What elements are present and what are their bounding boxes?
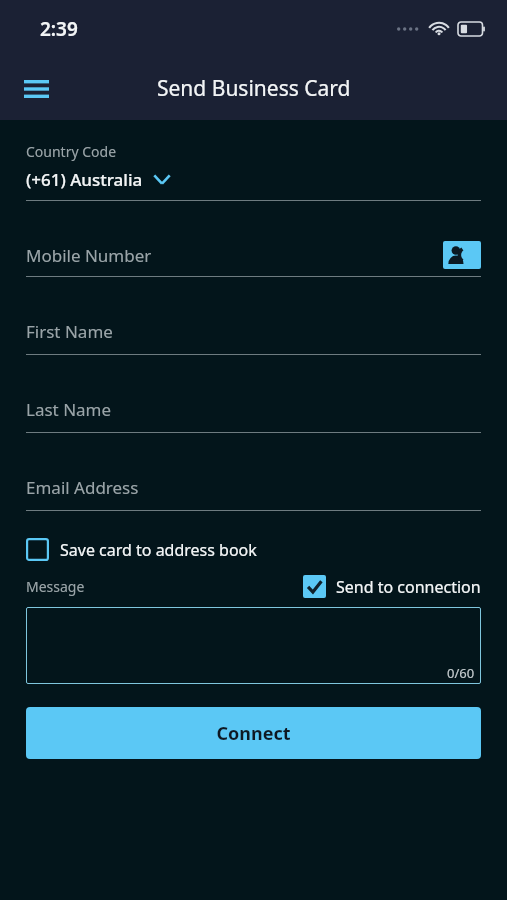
staticText: First Name <box>26 320 113 343</box>
staticText: (+61) Australia <box>26 168 143 191</box>
button[interactable]: Mobile Number <box>26 240 481 270</box>
staticText: Message <box>26 577 85 596</box>
button[interactable]: (+61) Australia <box>26 168 481 191</box>
button[interactable]: Last Name <box>26 397 481 421</box>
staticText: Connect <box>216 721 291 746</box>
staticText: Last Name <box>26 398 112 421</box>
staticText: Mobile Number <box>26 244 152 267</box>
button[interactable]: Save card to address book <box>26 538 257 561</box>
button[interactable]: 0/60 <box>26 607 481 684</box>
staticText: 0/60 <box>447 664 475 682</box>
staticText: 2:39 <box>40 16 78 42</box>
staticText: Country Code <box>26 142 117 161</box>
staticText: Send Business Card <box>157 74 351 103</box>
staticText: Email Address <box>26 476 139 499</box>
staticText: Save card to address book <box>60 539 257 561</box>
button[interactable]: Pick contact <box>443 241 481 269</box>
button[interactable]: Open navigation menu <box>12 65 60 113</box>
button[interactable]: Send to connection <box>303 575 481 598</box>
button[interactable]: Connect <box>26 707 481 759</box>
button[interactable]: First Name <box>26 319 481 343</box>
staticText: Send to connection <box>336 576 481 598</box>
button[interactable]: Email Address <box>26 475 481 499</box>
